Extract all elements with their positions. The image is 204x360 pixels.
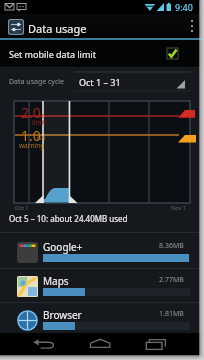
staticText: Set mobile data limit	[9, 48, 96, 60]
staticText: Browser	[43, 308, 82, 322]
staticText: warning	[19, 141, 45, 150]
staticText: Oct 1	[15, 204, 29, 211]
staticText: 1.0	[21, 126, 41, 145]
button[interactable]: Maps	[0, 269, 204, 303]
button[interactable]: Home	[80, 334, 120, 358]
staticText: GB	[37, 134, 46, 142]
button[interactable]	[0, 14, 204, 40]
staticText: Nov 1	[171, 204, 186, 211]
staticText: 8.36MB	[159, 241, 184, 251]
button[interactable]: Google+	[0, 235, 204, 269]
staticText: 9:40	[175, 1, 193, 13]
staticText: Maps	[43, 274, 69, 288]
staticText: Oct 5 – 10: about 24.40MB used	[9, 213, 128, 224]
button[interactable]: Back	[24, 334, 64, 358]
staticText: 2.0	[21, 103, 41, 122]
staticText: Oct 1 – 31	[79, 76, 121, 88]
button[interactable]: Recent apps	[136, 334, 176, 358]
staticText: limit	[32, 118, 46, 127]
staticText: Data usage cycle	[9, 77, 65, 87]
staticText: 2.77MB	[159, 275, 184, 285]
staticText: Google+	[43, 240, 83, 254]
button[interactable]: Browser	[0, 303, 204, 337]
staticText: 1.81MB	[159, 309, 184, 319]
button[interactable]	[0, 40, 204, 67]
button[interactable]	[0, 68, 204, 95]
staticText: GB	[37, 112, 46, 120]
staticText: Data usage	[28, 21, 87, 36]
button[interactable]: More options	[182, 16, 202, 38]
